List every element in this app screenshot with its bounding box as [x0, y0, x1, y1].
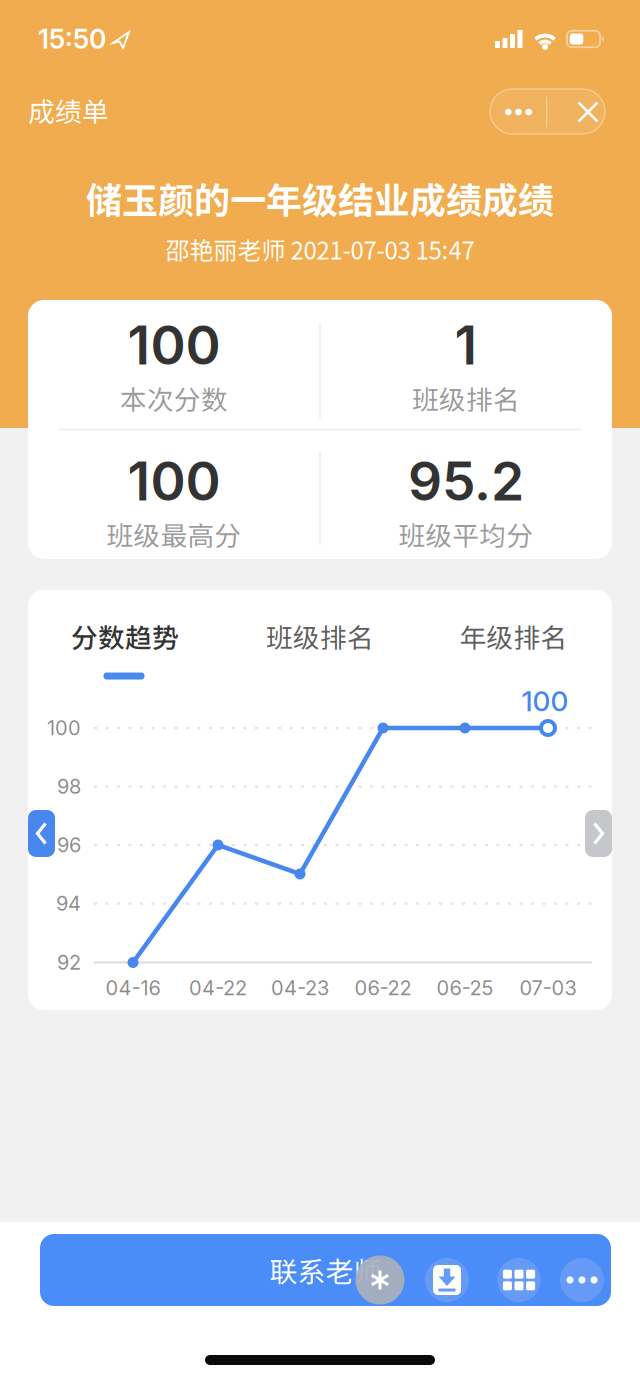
button[interactable]: Assistive ball	[355, 1255, 404, 1304]
staticText: 本次分数	[120, 379, 228, 417]
staticText: 100	[47, 716, 81, 740]
button[interactable]: More	[490, 89, 546, 134]
staticText: 07-03	[519, 976, 576, 1000]
staticText: 班级最高分	[106, 515, 241, 553]
staticText: 成绩单	[28, 91, 109, 129]
staticText: 92	[57, 950, 81, 975]
staticText: 06-25	[436, 976, 493, 1000]
staticText: 年级排名	[459, 617, 567, 655]
button[interactable]: Apps	[497, 1258, 541, 1302]
staticText: 04-23	[271, 976, 329, 1000]
staticText: 95.2	[408, 449, 524, 513]
staticText: 98	[57, 774, 81, 799]
button[interactable]: Download	[425, 1258, 469, 1302]
staticText: 96	[57, 833, 81, 857]
staticText: 06-22	[354, 976, 411, 1000]
button[interactable]: Previous	[28, 810, 55, 857]
staticText: 分数趋势	[71, 617, 179, 655]
staticText: 邵艳丽老师 2021-07-03 15:47	[165, 232, 474, 266]
button[interactable]: More actions	[560, 1258, 604, 1302]
staticText: 04-22	[189, 976, 247, 1000]
staticText: 94	[56, 891, 81, 916]
button[interactable]: 联系老师	[40, 1234, 611, 1306]
staticText: 1	[454, 313, 477, 377]
staticText: 100	[127, 313, 220, 377]
staticText: 04-16	[105, 976, 160, 1000]
staticText: 联系老师	[269, 1250, 381, 1290]
staticText: 储玉颜的一年级结业成绩成绩	[86, 172, 554, 224]
button[interactable]: 分数趋势	[50, 611, 200, 661]
staticText: 班级排名	[266, 617, 374, 655]
staticText: 15:50	[38, 23, 106, 55]
staticText: 100	[127, 449, 220, 513]
staticText: 班级平均分	[398, 515, 533, 553]
button[interactable]: 班级排名	[245, 611, 395, 661]
staticText: 100	[521, 684, 568, 718]
button[interactable]: 年级排名	[438, 611, 588, 661]
button[interactable]: Close	[560, 89, 616, 134]
staticText: 班级排名	[412, 379, 520, 417]
button[interactable]: Next	[585, 810, 612, 857]
